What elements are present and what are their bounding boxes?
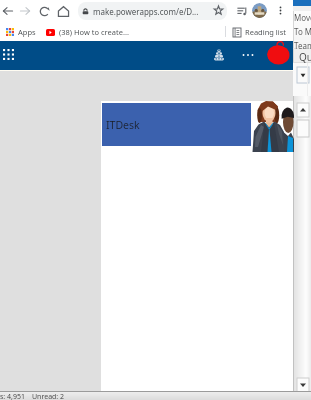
staticText: ITDesk: [106, 118, 140, 132]
button[interactable]: Reading list: [232, 27, 288, 37]
staticText: To M: [294, 26, 311, 37]
button[interactable]: Profile: [252, 3, 267, 18]
staticText: Qui: [299, 50, 311, 64]
button[interactable]: Scroll up: [297, 103, 309, 117]
button[interactable]: Scroll down: [297, 378, 309, 392]
button[interactable]: Apps: [4, 27, 38, 37]
button[interactable]: (38) How to create...: [44, 27, 131, 37]
button[interactable]: App launcher: [1, 47, 16, 62]
button[interactable]: More options: [274, 4, 287, 17]
button[interactable]: make.powerapps.com/e/D...: [78, 2, 227, 20]
button[interactable]: More commands: [240, 47, 256, 63]
staticText: (38) How to create...: [59, 27, 129, 37]
button[interactable]: ITDesk: [102, 103, 251, 146]
button[interactable]: Reload: [36, 3, 52, 19]
button[interactable]: Add to reading list: [235, 4, 248, 17]
staticText: make.powerapps.com/e/D...: [93, 6, 199, 17]
staticText: Team: [294, 40, 311, 51]
staticText: Move: [294, 12, 311, 23]
button[interactable]: Home: [55, 3, 71, 19]
staticText: Apps: [18, 27, 36, 37]
staticText: Reading list: [245, 27, 287, 37]
button[interactable]: Quick steps menu: [297, 67, 309, 83]
staticText: s: 4,951: [0, 392, 25, 400]
button[interactable]: People: [211, 47, 226, 62]
button[interactable]: Forward: [17, 3, 33, 19]
staticText: Unread: 2: [32, 392, 65, 400]
button[interactable]: Back: [0, 3, 16, 19]
button[interactable]: Bookmark this tab: [212, 4, 225, 17]
